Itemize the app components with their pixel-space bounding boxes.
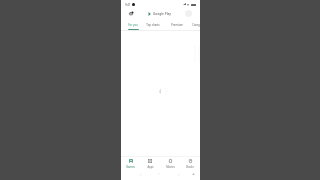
button[interactable]: Categ — [189, 20, 203, 31]
staticText: Premium — [171, 23, 183, 27]
button[interactable]: Books — [180, 156, 200, 170]
button[interactable]: Top charts — [144, 20, 162, 31]
button[interactable]: Premium — [168, 20, 185, 31]
button[interactable]: Games — [121, 156, 140, 170]
staticText: Top charts — [146, 23, 160, 27]
staticText: Games — [126, 165, 135, 169]
staticText: Books — [186, 165, 194, 169]
staticText: 9:41 — [125, 3, 131, 7]
button[interactable]: Show keyboard — [190, 171, 196, 177]
staticText: Categ — [192, 23, 200, 27]
button[interactable]: Apps — [140, 156, 160, 170]
staticText: Google Play — [153, 12, 172, 16]
staticText: Apps — [147, 165, 154, 169]
staticText: For you — [128, 23, 138, 27]
button[interactable]: Account — [183, 7, 194, 19]
button[interactable]: For you — [126, 20, 140, 31]
button[interactable]: Movies — [160, 156, 180, 170]
staticText: Movies — [166, 165, 175, 169]
button[interactable]: My Play store — [126, 7, 136, 19]
